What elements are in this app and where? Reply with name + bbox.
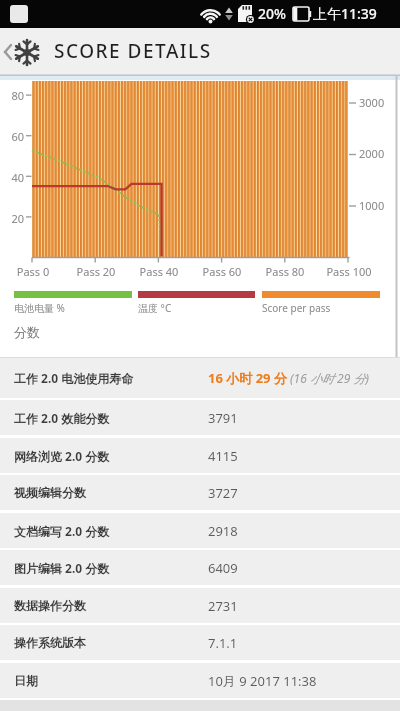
- staticText: 2000: [359, 146, 385, 161]
- button[interactable]: 文档编写 2.0 分数: [0, 513, 400, 548]
- button[interactable]: 操作系统版本: [0, 625, 400, 660]
- staticText: 文档编写 2.0 分数: [14, 523, 110, 539]
- staticText: 3727: [208, 484, 238, 502]
- staticText: 6409: [208, 559, 238, 577]
- staticText: 温度 °C: [138, 301, 172, 315]
- staticText: 2918: [208, 522, 238, 540]
- staticText: SCORE DETAILS: [54, 38, 212, 64]
- staticText: 分数: [14, 324, 40, 340]
- staticText: 20%: [258, 4, 286, 23]
- button[interactable]: 网络浏览 2.0 分数: [0, 438, 400, 473]
- staticText: 网络浏览 2.0 分数: [14, 448, 110, 464]
- staticText: 16 小时 29 分: [208, 369, 287, 387]
- staticText: 数据操作分数: [14, 598, 86, 613]
- staticText: 操作系统版本: [14, 635, 86, 650]
- button[interactable]: 数据操作分数: [0, 588, 400, 623]
- staticText: 2731: [208, 597, 238, 615]
- staticText: 上午11:39: [313, 4, 377, 23]
- staticText: 40: [0, 170, 24, 185]
- staticText: 日期: [14, 673, 38, 688]
- staticText: 电池电量 %: [14, 301, 65, 315]
- button[interactable]: Score per pass: [262, 291, 380, 315]
- staticText: 20: [0, 211, 24, 226]
- staticText: Score per pass: [262, 301, 331, 315]
- button[interactable]: 工作 2.0 电池使用寿命: [0, 358, 400, 398]
- button[interactable]: 工作 2.0 效能分数: [0, 400, 400, 435]
- staticText: Pass 0: [3, 264, 63, 279]
- button[interactable]: SCORE DETAILS: [0, 28, 400, 75]
- staticText: 3791: [208, 409, 238, 427]
- staticText: Pass 20: [66, 264, 126, 279]
- staticText: 图片编辑 2.0 分数: [14, 560, 110, 576]
- staticText: 7.1.1: [208, 634, 238, 652]
- staticText: 60: [0, 129, 24, 144]
- button[interactable]: 图片编辑 2.0 分数: [0, 550, 400, 585]
- staticText: 视频编辑分数: [14, 485, 86, 500]
- staticText: 1000: [359, 198, 385, 213]
- staticText: 工作 2.0 效能分数: [14, 410, 110, 426]
- staticText: 工作 2.0 电池使用寿命: [14, 370, 134, 386]
- staticText: 3000: [359, 95, 385, 110]
- staticText: Pass 40: [129, 264, 189, 279]
- staticText: 80: [0, 88, 24, 103]
- staticText: (16 小时 29 分): [287, 370, 369, 386]
- staticText: Pass 100: [319, 264, 379, 279]
- button[interactable]: 温度 °C: [138, 291, 255, 315]
- button[interactable]: 日期: [0, 663, 400, 698]
- staticText: Pass 80: [255, 264, 315, 279]
- button[interactable]: 视频编辑分数: [0, 475, 400, 510]
- button[interactable]: 电池电量 %: [14, 291, 132, 315]
- staticText: 10月 9 2017 11:38: [208, 672, 317, 690]
- staticText: Pass 60: [192, 264, 252, 279]
- staticText: 4115: [208, 447, 238, 465]
